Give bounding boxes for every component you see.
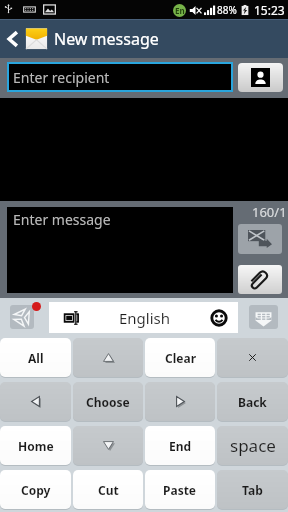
button[interactable]: Back <box>0 19 288 58</box>
button[interactable]: Cut <box>73 470 143 509</box>
button[interactable]: Paste <box>145 470 215 509</box>
staticText: 88% <box>217 3 237 17</box>
button[interactable]: right <box>145 382 215 421</box>
button[interactable]: Enter message <box>7 207 233 293</box>
staticText: space <box>230 434 276 457</box>
button[interactable]: Tab <box>217 470 288 509</box>
button[interactable]: Copy <box>0 470 71 509</box>
button[interactable]: Hide keyboard <box>249 305 278 329</box>
staticText: New message <box>54 28 159 50</box>
staticText: Home <box>18 438 54 454</box>
staticText: Copy <box>21 482 51 498</box>
staticText: All <box>28 350 44 366</box>
staticText: Enter message <box>13 210 111 229</box>
button[interactable]: Send <box>238 224 282 254</box>
button[interactable]: Back <box>217 382 288 421</box>
button[interactable]: left <box>0 382 71 421</box>
staticText: Tab <box>242 482 263 498</box>
button[interactable]: Enter recipient <box>7 62 233 92</box>
staticText: Back <box>238 394 267 410</box>
button[interactable]: All <box>0 338 71 377</box>
staticText: Cut <box>98 482 119 498</box>
button[interactable]: close <box>217 338 288 377</box>
other: Back <box>6 30 20 48</box>
button[interactable]: Voice input <box>10 305 34 329</box>
staticText: Clear <box>165 350 196 366</box>
staticText: Enter recipient <box>13 68 110 87</box>
button[interactable]: shift <box>73 338 143 377</box>
button[interactable]: space <box>217 426 288 465</box>
button[interactable]: Home <box>0 426 71 465</box>
staticText: En <box>175 5 185 16</box>
staticText: English <box>119 308 171 328</box>
button[interactable]: down <box>73 426 143 465</box>
button[interactable]: Clear <box>145 338 215 377</box>
staticText: 160/1 <box>252 203 287 221</box>
button[interactable]: Attach <box>238 265 282 294</box>
button[interactable]: English <box>49 302 238 333</box>
button[interactable]: Contacts <box>238 63 283 92</box>
staticText: Paste <box>163 482 197 498</box>
button[interactable]: End <box>145 426 215 465</box>
staticText: 15:23 <box>254 2 285 18</box>
staticText: Choose <box>86 394 130 410</box>
staticText: End <box>169 438 192 454</box>
button[interactable]: Choose <box>73 382 143 421</box>
